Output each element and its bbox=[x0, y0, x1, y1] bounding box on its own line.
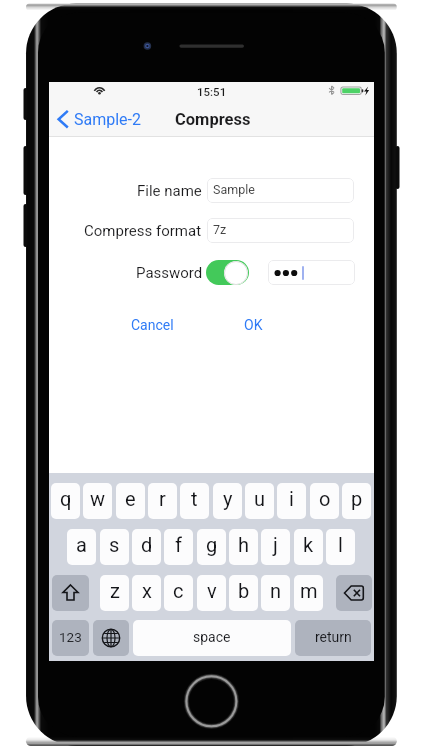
button[interactable]: v bbox=[197, 575, 226, 611]
staticText: h bbox=[238, 533, 250, 556]
button[interactable]: e bbox=[116, 483, 145, 519]
button[interactable]: Shift bbox=[52, 575, 89, 611]
staticText: 7z bbox=[213, 222, 227, 237]
staticText: return bbox=[315, 629, 352, 645]
button[interactable]: f bbox=[164, 529, 193, 565]
button[interactable]: OK bbox=[244, 317, 263, 333]
staticText: Compress bbox=[175, 110, 251, 129]
button[interactable]: h bbox=[229, 529, 258, 565]
staticText: d bbox=[141, 533, 153, 556]
staticText: 15:51 bbox=[197, 85, 227, 98]
button[interactable]: l bbox=[326, 529, 355, 565]
staticText: Sample bbox=[213, 182, 255, 197]
button[interactable]: a bbox=[67, 529, 96, 565]
button[interactable]: w bbox=[83, 483, 112, 519]
staticText: Cancel bbox=[131, 317, 174, 333]
button[interactable]: 7z bbox=[207, 218, 354, 243]
button[interactable] bbox=[268, 260, 355, 285]
button[interactable]: d bbox=[132, 529, 161, 565]
staticText: g bbox=[206, 533, 218, 556]
staticText: q bbox=[60, 487, 72, 510]
button[interactable]: u bbox=[245, 483, 274, 519]
staticText: n bbox=[270, 579, 282, 602]
staticText: v bbox=[207, 579, 217, 602]
button[interactable]: return bbox=[295, 620, 371, 656]
button[interactable]: z bbox=[100, 575, 129, 611]
button[interactable]: x bbox=[132, 575, 161, 611]
staticText: y bbox=[223, 487, 233, 510]
button[interactable]: i bbox=[277, 483, 306, 519]
staticText: space bbox=[193, 629, 231, 645]
staticText: j bbox=[273, 533, 278, 556]
staticText: File name bbox=[137, 182, 202, 200]
staticText: c bbox=[173, 579, 184, 602]
staticText: OK bbox=[244, 317, 263, 333]
staticText: o bbox=[319, 487, 331, 510]
button[interactable]: s bbox=[100, 529, 129, 565]
staticText: t bbox=[191, 487, 198, 510]
staticText: s bbox=[109, 533, 120, 556]
staticText: a bbox=[76, 533, 87, 556]
button[interactable]: Sample bbox=[207, 178, 354, 203]
staticText: Password bbox=[136, 264, 203, 282]
button[interactable]: b bbox=[229, 575, 258, 611]
staticText: b bbox=[238, 579, 250, 602]
button[interactable]: Sample-2 bbox=[56, 108, 141, 130]
staticText: x bbox=[142, 579, 152, 602]
button[interactable]: Cancel bbox=[131, 317, 174, 333]
staticText: p bbox=[351, 487, 363, 510]
button[interactable]: m bbox=[294, 575, 323, 611]
button[interactable]: q bbox=[51, 483, 80, 519]
button[interactable] bbox=[206, 260, 249, 285]
button[interactable]: Backspace bbox=[336, 575, 372, 611]
staticText: r bbox=[159, 487, 166, 510]
button[interactable]: space bbox=[133, 620, 291, 656]
staticText: w bbox=[90, 487, 106, 510]
staticText: 123 bbox=[59, 629, 82, 645]
button[interactable]: j bbox=[261, 529, 290, 565]
button[interactable]: y bbox=[213, 483, 242, 519]
staticText: Compress format bbox=[84, 222, 202, 240]
staticText: l bbox=[338, 533, 343, 556]
button[interactable]: p bbox=[342, 483, 371, 519]
staticText: m bbox=[300, 579, 318, 602]
button[interactable]: n bbox=[261, 575, 290, 611]
button[interactable]: o bbox=[310, 483, 339, 519]
staticText: f bbox=[175, 533, 182, 556]
button[interactable]: g bbox=[197, 529, 226, 565]
button[interactable]: k bbox=[294, 529, 323, 565]
staticText: u bbox=[254, 487, 266, 510]
button[interactable]: t bbox=[180, 483, 209, 519]
staticText: Sample-2 bbox=[74, 110, 142, 129]
staticText: e bbox=[125, 487, 136, 510]
button[interactable]: r bbox=[148, 483, 177, 519]
button[interactable]: c bbox=[164, 575, 193, 611]
button[interactable]: Change keyboard bbox=[93, 620, 129, 656]
staticText: z bbox=[110, 579, 120, 602]
staticText: k bbox=[303, 533, 314, 556]
button[interactable]: 123 bbox=[52, 620, 89, 656]
staticText: i bbox=[289, 487, 294, 510]
